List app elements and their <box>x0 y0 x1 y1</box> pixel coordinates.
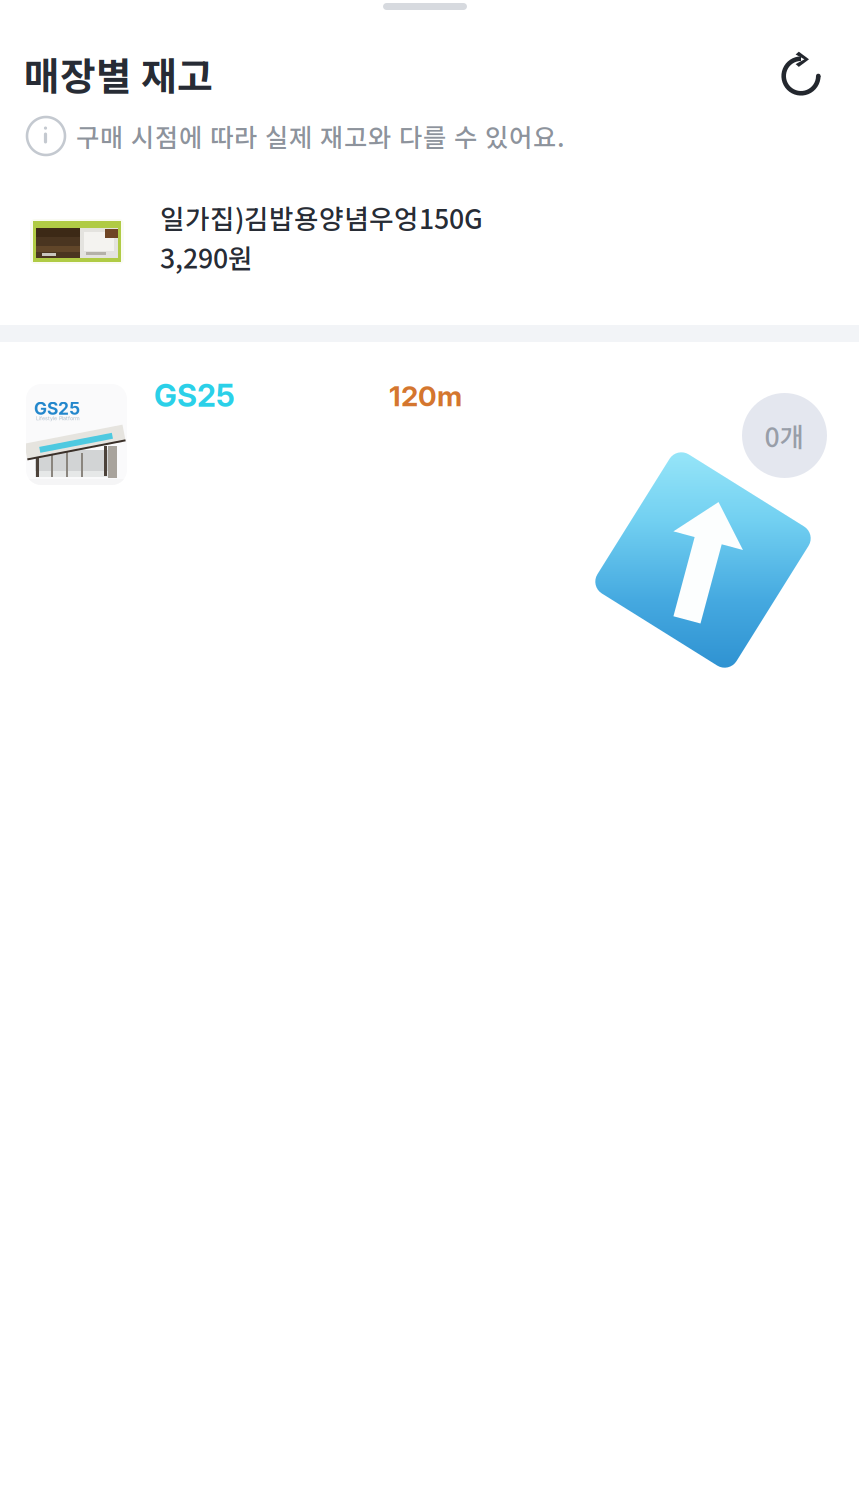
staticText: GS25 <box>154 377 235 414</box>
staticText: Lifestyle Platform <box>36 415 80 421</box>
button[interactable]: 새로고침 <box>779 54 823 98</box>
staticText: 일가집)김밥용양념우엉150G <box>160 198 483 237</box>
staticText: 매장별 재고 <box>24 46 213 102</box>
staticText: GS25 <box>34 398 80 419</box>
staticText: 120m <box>389 379 462 413</box>
staticText: 3,290원 <box>160 238 253 276</box>
button[interactable]: 일가집)김밥용양념우엉150G <box>30 198 859 276</box>
staticText: 구매 시점에 따라 실제 재고와 다를 수 있어요. <box>76 118 565 154</box>
button[interactable]: GS25 <box>0 384 859 504</box>
staticText: 0개 <box>764 416 804 455</box>
